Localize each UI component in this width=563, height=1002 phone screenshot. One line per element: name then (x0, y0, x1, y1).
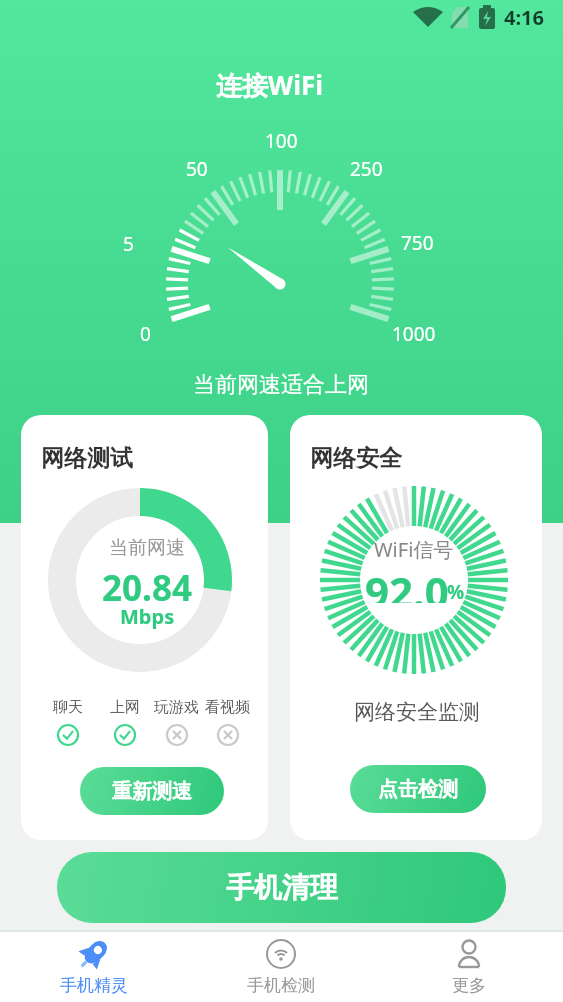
staticText: 更多 (452, 975, 486, 996)
staticText: 看视频 (205, 698, 250, 717)
button[interactable]: 手机精灵 (0, 930, 187, 1002)
button[interactable]: 重新测速 (80, 767, 224, 815)
staticText: 92.0 (365, 563, 449, 603)
staticText: 聊天 (53, 698, 83, 717)
staticText: 0 (140, 321, 151, 347)
staticText: 连接WiFi (216, 67, 323, 103)
staticText: 网络安全监测 (354, 699, 480, 725)
button[interactable]: 手机清理 (57, 852, 506, 923)
staticText: 手机精灵 (60, 975, 128, 996)
staticText: 100 (265, 128, 298, 154)
staticText: 当前网速适合上网 (193, 371, 369, 399)
button[interactable]: 更多 (375, 930, 563, 1002)
button[interactable]: 手机检测 (187, 930, 375, 1002)
staticText: 重新测速 (112, 779, 192, 804)
staticText: 上网 (110, 698, 140, 717)
staticText: 5 (123, 231, 134, 257)
staticText: 点击检测 (378, 777, 458, 802)
staticText: 手机清理 (226, 870, 338, 905)
staticText: 250 (350, 156, 383, 182)
staticText: 玩游戏 (154, 698, 199, 717)
staticText: 当前网速 (109, 536, 185, 560)
staticText: 20.84 (102, 564, 192, 604)
button[interactable]: 点击检测 (350, 765, 486, 813)
staticText: 50 (186, 156, 208, 182)
staticText: % (447, 579, 465, 605)
staticText: 网络安全 (310, 444, 402, 473)
staticText: 4:16 (504, 4, 544, 31)
staticText: Mbps (120, 603, 175, 630)
staticText: 750 (401, 230, 434, 256)
staticText: WiFi信号 (374, 536, 454, 563)
staticText: 1000 (392, 321, 436, 347)
staticText: 手机检测 (247, 975, 315, 996)
staticText: 网络测试 (41, 444, 133, 473)
